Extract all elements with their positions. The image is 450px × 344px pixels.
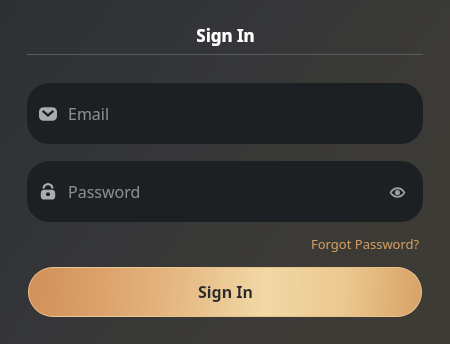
button[interactable]: Forgot Password? [309,232,422,256]
button[interactable]: Sign In [28,267,422,317]
staticText: Sign In [198,281,253,303]
staticText: Forgot Password? [311,235,420,253]
staticText: Sign In [196,24,255,47]
button[interactable]: Password [27,161,423,222]
button[interactable]: Show password [385,180,409,204]
staticText: Email [68,103,110,125]
button[interactable]: Email [27,83,423,144]
staticText: Password [68,181,141,203]
